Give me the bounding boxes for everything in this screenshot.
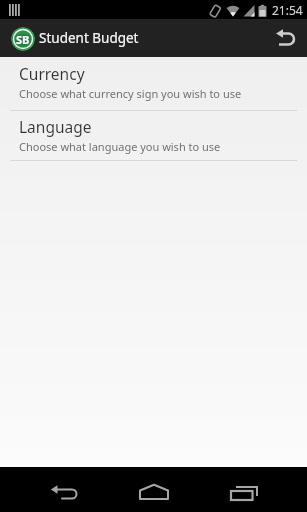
staticText: Currency — [19, 63, 85, 84]
staticText: 21:54 — [272, 2, 303, 18]
button[interactable] — [263, 19, 307, 57]
staticText: Language — [19, 116, 92, 137]
button[interactable]: Language — [0, 111, 307, 160]
button[interactable] — [41, 467, 86, 512]
staticText: SB — [16, 32, 30, 47]
staticText: Choose what language you wish to use — [19, 139, 221, 154]
staticText: Student Budget — [39, 29, 139, 47]
button[interactable]: SB — [11, 27, 35, 51]
staticText: Choose what currency sign you wish to us… — [19, 86, 242, 101]
button[interactable] — [221, 467, 266, 512]
button[interactable] — [131, 467, 176, 512]
button[interactable]: Currency — [0, 57, 307, 110]
